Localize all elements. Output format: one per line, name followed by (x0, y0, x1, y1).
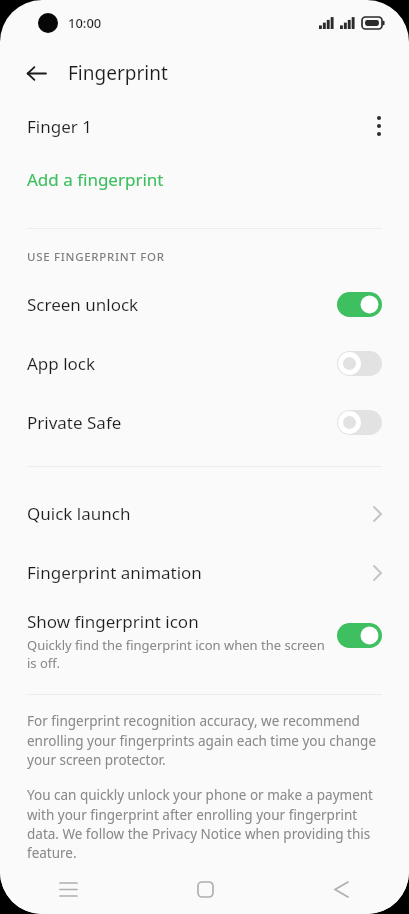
staticText: Quick launch (27, 502, 131, 525)
button[interactable]: Recent apps (0, 864, 137, 914)
staticText: Screen unlock (27, 293, 139, 316)
button[interactable]: Finger 1 (0, 100, 409, 152)
button[interactable]: Show fingerprint icon (0, 602, 409, 680)
button[interactable]: More options (359, 106, 399, 146)
button[interactable]: Screen unlock (0, 275, 409, 334)
button[interactable]: Home (137, 864, 273, 914)
button[interactable]: Back (273, 864, 409, 914)
button[interactable]: App lock (0, 334, 409, 393)
staticText: Finger 1 (27, 115, 92, 138)
staticText: Fingerprint animation (27, 561, 202, 584)
staticText: 10:00 (68, 14, 102, 32)
staticText: App lock (27, 352, 96, 375)
staticText: Private Safe (27, 411, 122, 434)
button[interactable]: Quick launch (0, 484, 409, 543)
button[interactable]: Private Safe (0, 393, 409, 452)
staticText: You can quickly unlock your phone or mak… (27, 786, 382, 862)
button[interactable]: Back (14, 51, 58, 95)
button[interactable]: Fingerprint animation (0, 543, 409, 602)
staticText: Add a fingerprint (27, 168, 164, 191)
button[interactable]: Add a fingerprint (0, 152, 409, 206)
staticText: For fingerprint recognition accuracy, we… (27, 712, 382, 769)
staticText: Show fingerprint icon (27, 610, 199, 633)
staticText: USE FINGERPRINT FOR (27, 249, 165, 265)
staticText: Fingerprint (68, 60, 168, 86)
staticText: Quickly find the fingerprint icon when t… (27, 636, 329, 672)
